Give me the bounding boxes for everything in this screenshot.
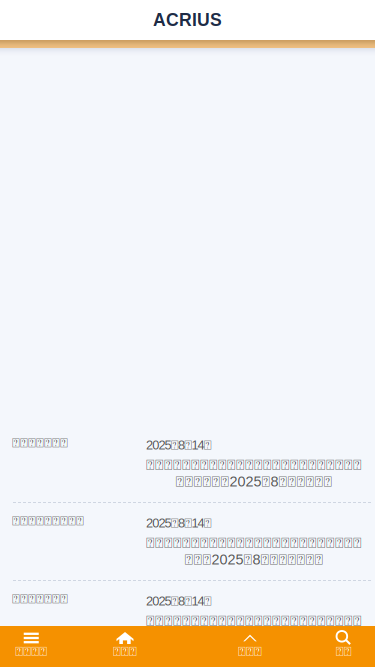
button[interactable]: Search <box>312 626 375 667</box>
staticText: ⍰⍰⍰⍰⍰⍰⍰⍰⍰⍰⍰⍰⍰⍰⍰⍰⍰⍰⍰⍰⍰⍰⍰⍰ <box>146 614 362 629</box>
staticText: ⍰⍰⍰ <box>238 646 262 658</box>
button[interactable]: ⍰⍰⍰⍰⍰⍰⍰ <box>0 425 375 502</box>
staticText: ⍰⍰⍰⍰⍰⍰2025⍰8⍰⍰⍰⍰⍰⍰ <box>175 473 332 490</box>
button[interactable]: ACRIUS <box>0 0 375 40</box>
staticText: ⍰⍰⍰⍰⍰⍰⍰⍰⍰ <box>12 515 84 528</box>
staticText: ⍰⍰ <box>336 646 352 658</box>
staticText: ⍰⍰⍰⍰⍰⍰⍰⍰⍰⍰⍰⍰⍰⍰⍰⍰⍰⍰⍰⍰⍰⍰⍰⍰ <box>146 536 362 551</box>
staticText: 2025⍰8⍰14⍰ <box>146 516 212 530</box>
staticText: ⍰⍰⍰ <box>113 646 137 658</box>
staticText: 2025⍰8⍰14⍰ <box>146 438 212 452</box>
button[interactable]: Home <box>62 626 187 667</box>
staticText: ⍰⍰⍰⍰⍰⍰2025⍰8⍰⍰⍰⍰⍰⍰ <box>175 629 332 646</box>
staticText: ⍰⍰⍰⍰ <box>15 646 47 658</box>
staticText: ⍰⍰⍰⍰⍰⍰⍰⍰⍰⍰⍰⍰⍰⍰⍰⍰⍰⍰⍰⍰⍰⍰⍰⍰ <box>146 458 362 473</box>
button[interactable]: ⍰⍰⍰⍰⍰⍰⍰⍰⍰ <box>0 503 375 580</box>
button[interactable]: Page top <box>187 626 312 667</box>
button[interactable]: ⍰⍰⍰⍰⍰⍰⍰ <box>0 581 375 658</box>
staticText: ACRIUS <box>153 10 222 30</box>
staticText: ⍰⍰⍰2025⍰8⍰⍰⍰⍰⍰⍰⍰ <box>184 551 323 568</box>
staticText: ⍰⍰⍰⍰⍰⍰⍰ <box>12 593 68 606</box>
staticText: 2025⍰8⍰14⍰ <box>146 594 212 608</box>
button[interactable]: Menu <box>0 626 62 667</box>
staticText: ⍰⍰⍰⍰⍰⍰⍰ <box>12 437 68 450</box>
